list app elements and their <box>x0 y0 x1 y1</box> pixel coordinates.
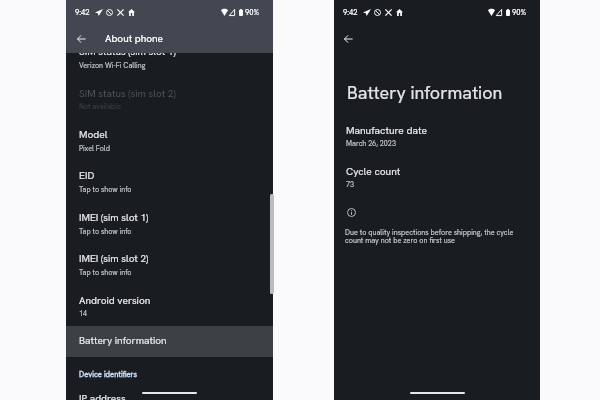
staticText: EID <box>79 169 95 182</box>
staticText: 90% <box>245 7 260 17</box>
staticText: IMEI (sim slot 1) <box>79 211 149 224</box>
staticText: IP address <box>79 392 126 400</box>
staticText: Tap to show info <box>79 268 132 277</box>
staticText: Device identifiers <box>79 369 138 379</box>
staticText: 90% <box>512 7 527 17</box>
staticText: About phone <box>105 32 164 45</box>
button[interactable] <box>66 38 273 72</box>
button[interactable] <box>66 121 273 155</box>
button[interactable] <box>66 80 273 114</box>
button[interactable] <box>66 326 273 357</box>
staticText: Cycle count <box>346 165 401 178</box>
other: Back <box>344 35 353 43</box>
staticText: Tap to show info <box>79 185 132 194</box>
staticText: 9:42 <box>343 7 358 17</box>
button[interactable] <box>334 162 540 192</box>
button[interactable]: Back <box>67 27 96 51</box>
button[interactable] <box>66 162 273 196</box>
staticText: Due to quality inspections before shippi… <box>345 228 517 246</box>
button[interactable] <box>66 245 273 279</box>
staticText: Model <box>79 128 108 141</box>
staticText: Pixel Fold <box>79 144 110 153</box>
other: Back <box>77 35 86 43</box>
staticText: SIM status (sim slot 2) <box>79 87 176 100</box>
staticText: 73 <box>346 180 355 189</box>
staticText: Tap to show info <box>79 227 132 236</box>
staticText: SIM status (sim slot 1) <box>79 45 176 58</box>
staticText: 14 <box>79 309 88 318</box>
button[interactable] <box>66 204 273 238</box>
staticText: Battery information <box>347 81 503 104</box>
staticText: Manufacture date <box>346 124 427 137</box>
staticText: Battery information <box>79 334 167 347</box>
staticText: Android version <box>79 294 151 307</box>
button[interactable] <box>66 287 273 321</box>
staticText: March 26, 2023 <box>346 139 396 148</box>
button[interactable]: Back <box>334 27 363 51</box>
staticText: 9:42 <box>75 7 90 17</box>
button[interactable] <box>334 120 540 150</box>
staticText: Verizon Wi-Fi Calling <box>79 61 146 70</box>
staticText: IMEI (sim slot 2) <box>79 252 149 265</box>
staticText: Not available <box>79 102 122 111</box>
